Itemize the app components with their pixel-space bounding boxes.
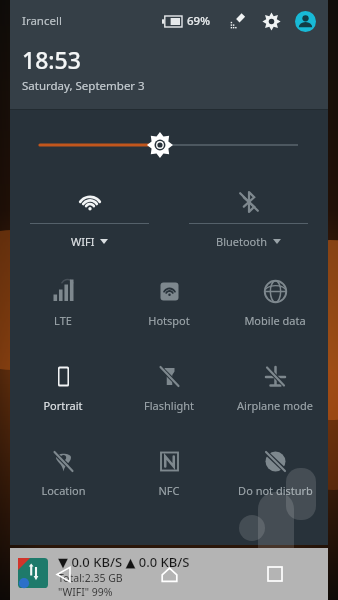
staticText: Portrait: [43, 398, 83, 413]
staticText: Airplane mode: [237, 398, 313, 413]
staticText: NFC: [158, 483, 180, 498]
staticText: Bluetooth: [216, 234, 268, 249]
button[interactable]: ▼ 0.0 KB/S ▲ 0.0 KB/S: [10, 548, 328, 600]
staticText: Saturday, September 3: [22, 78, 145, 94]
staticText: Mobile data: [244, 313, 306, 328]
staticText: Flashlight: [144, 398, 194, 413]
staticText: "WIFI" 99%: [58, 585, 113, 599]
staticText: Do not disturb: [238, 483, 313, 498]
button[interactable]: Settings: [258, 8, 284, 34]
button[interactable]: Mobile data: [222, 258, 328, 343]
staticText: LTE: [54, 313, 72, 328]
staticText: 18:53: [22, 44, 81, 75]
button[interactable]: User profile: [292, 8, 318, 34]
button[interactable]: NFC: [116, 428, 222, 513]
button[interactable]: Bluetooth: [189, 180, 308, 258]
button[interactable]: Portrait: [10, 343, 116, 428]
staticText: Irancell: [22, 13, 62, 29]
button[interactable]: Back: [10, 548, 116, 600]
button[interactable]: Edit tiles: [224, 8, 250, 34]
button[interactable]: Location: [10, 428, 116, 513]
staticText: WIFI: [71, 234, 95, 249]
button[interactable]: Do not disturb: [222, 428, 328, 513]
staticText: 69%: [187, 13, 210, 29]
button[interactable]: Home: [116, 548, 222, 600]
button[interactable]: Airplane mode: [222, 343, 328, 428]
button[interactable]: WIFI: [30, 180, 149, 258]
staticText: Hotspot: [148, 313, 190, 328]
button[interactable]: Brightness: [10, 110, 328, 180]
button[interactable]: Flashlight: [116, 343, 222, 428]
staticText: ▼ 0.0 KB/S ▲ 0.0 KB/S: [58, 553, 190, 571]
button[interactable]: LTE: [10, 258, 116, 343]
staticText: Total:2.35 GB: [58, 571, 123, 585]
button[interactable]: Recent apps: [222, 548, 328, 600]
staticText: Location: [41, 483, 86, 498]
button[interactable]: Hotspot: [116, 258, 222, 343]
